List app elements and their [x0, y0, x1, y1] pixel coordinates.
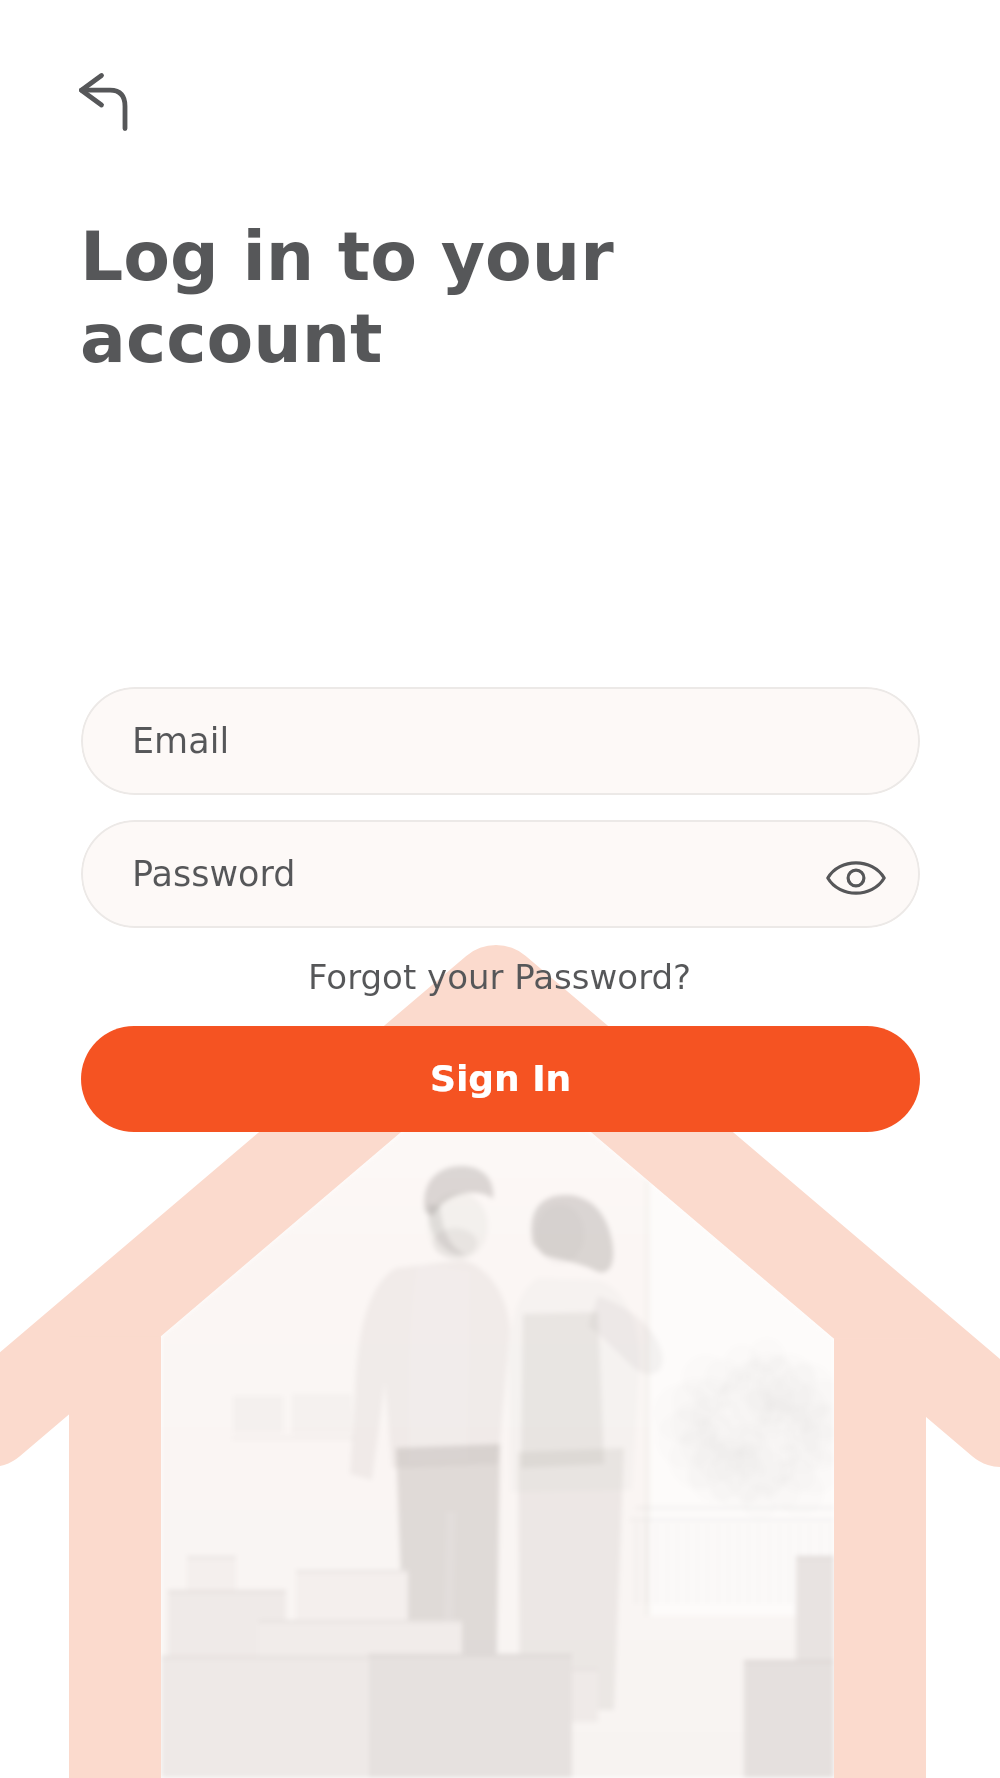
button[interactable]: Sign In — [81, 1026, 920, 1132]
staticText: Email — [132, 721, 230, 762]
button[interactable]: Show password — [818, 836, 894, 912]
button[interactable]: Back — [56, 50, 152, 146]
staticText: Log in to your account — [80, 217, 614, 378]
button[interactable]: Password — [81, 820, 920, 928]
button[interactable]: Forgot your Password? — [294, 947, 706, 1007]
staticText: Forgot your Password? — [308, 957, 692, 997]
staticText: Password — [132, 854, 296, 895]
button[interactable]: Email — [81, 687, 920, 795]
staticText: Sign In — [430, 1058, 572, 1100]
